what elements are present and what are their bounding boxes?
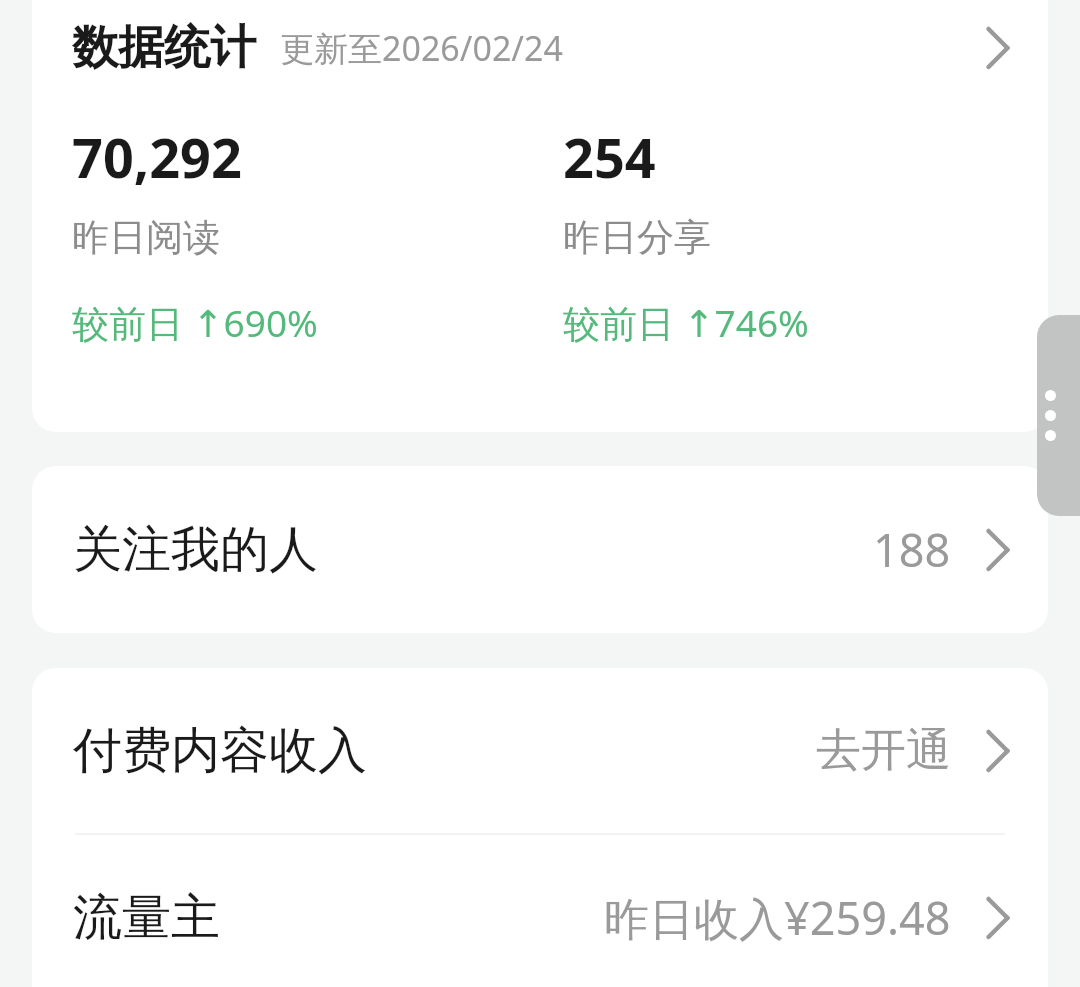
staticText: 去开通 — [816, 722, 951, 779]
staticText: 188 — [873, 519, 951, 580]
button[interactable]: 付费内容收入 — [32, 668, 1048, 833]
staticText: 254 — [563, 120, 656, 194]
button[interactable]: 数据统计 — [32, 0, 1048, 432]
staticText: 70,292 — [72, 120, 242, 194]
button[interactable]: 关注我的人 — [32, 466, 1048, 633]
staticText: 付费内容收入 — [73, 720, 367, 782]
staticText: 昨日收入¥259.48 — [604, 887, 951, 948]
other: 数据统计详情 — [966, 16, 1030, 80]
staticText: 昨日阅读 — [72, 214, 220, 261]
button[interactable]: 更多 — [1037, 315, 1080, 516]
staticText: 昨日分享 — [563, 214, 711, 261]
staticText: 数据统计 — [72, 19, 256, 77]
staticText: 较前日 ↑746% — [563, 297, 809, 348]
staticText: 关注我的人 — [73, 519, 318, 581]
button[interactable]: 流量主 — [32, 835, 1048, 987]
staticText: 较前日 ↑690% — [72, 297, 318, 348]
staticText: 流量主 — [73, 887, 220, 949]
staticText: 更新至2026/02/24 — [280, 25, 563, 71]
